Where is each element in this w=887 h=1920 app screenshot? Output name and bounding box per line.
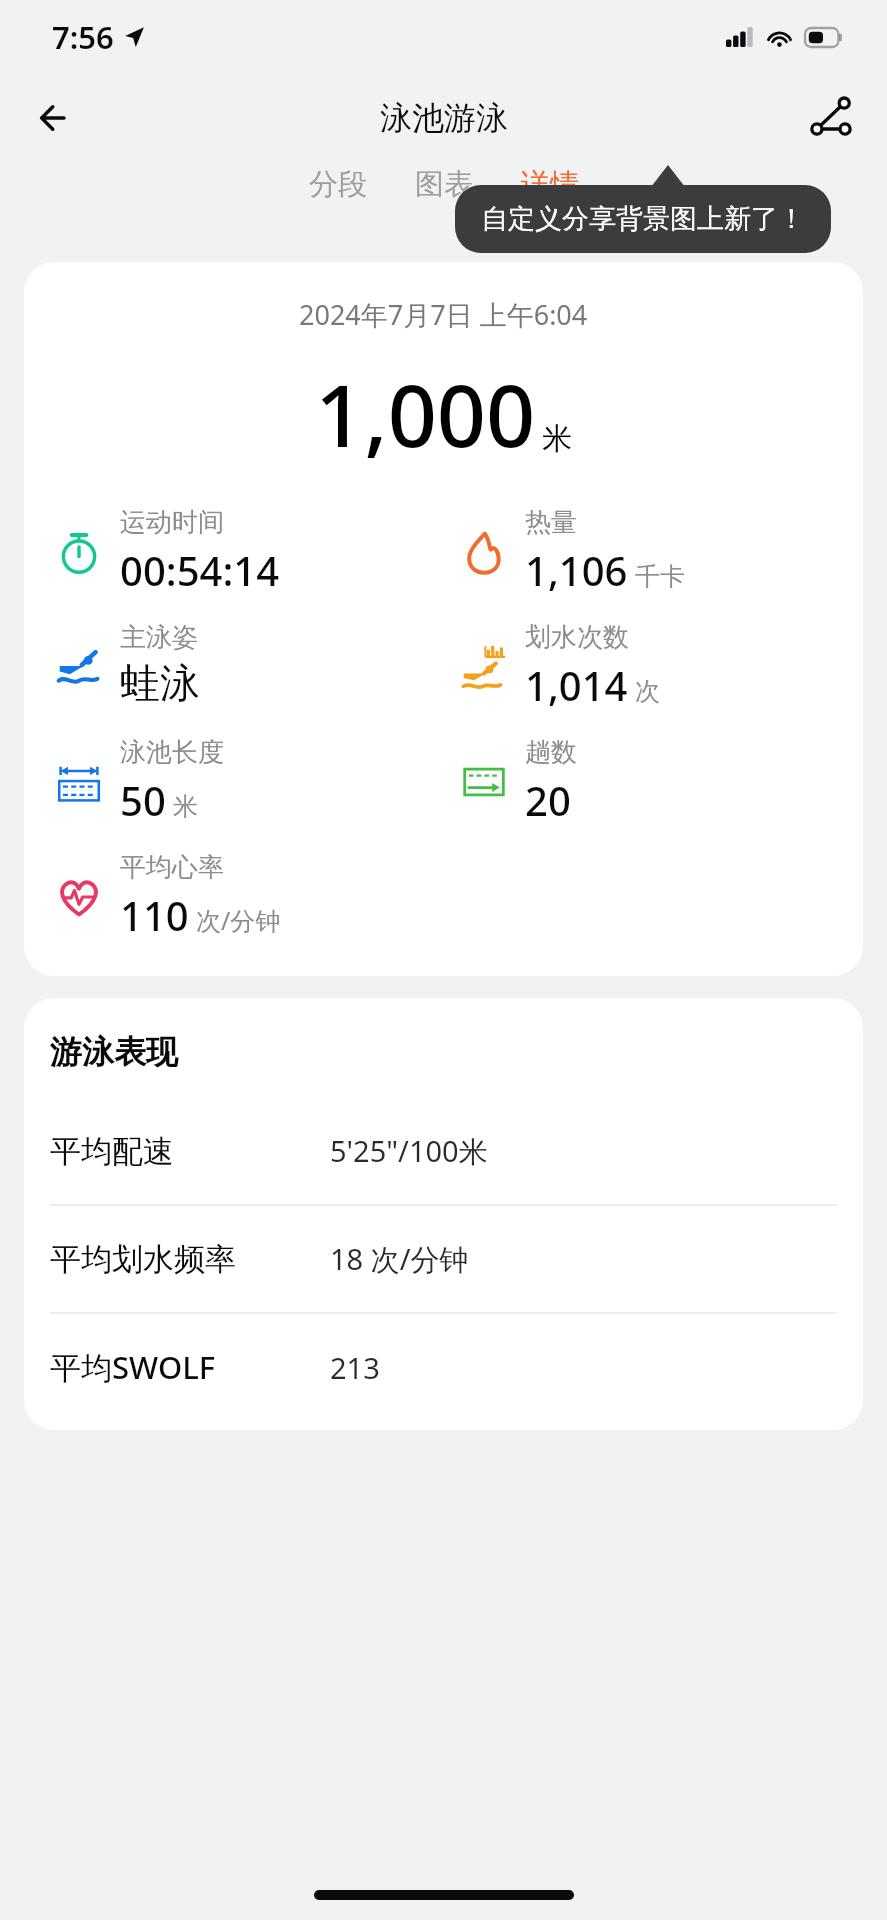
staticText: 平均配速 xyxy=(50,1132,330,1171)
staticText: 主泳姿 xyxy=(120,621,198,654)
button[interactable]: 趟数 xyxy=(457,736,577,827)
staticText: 分段 xyxy=(309,166,367,203)
staticText: 1,014 xyxy=(525,658,628,712)
staticText: 5'25"/100米 xyxy=(330,1131,488,1171)
staticText: 自定义分享背景图上新了！ xyxy=(481,202,805,236)
button[interactable]: 热量 xyxy=(457,506,685,597)
staticText: 运动时间 xyxy=(120,506,224,539)
button[interactable]: 详情 xyxy=(511,162,589,223)
button[interactable]: 返回 xyxy=(22,84,90,152)
button[interactable]: 运动时间 xyxy=(52,506,280,597)
staticText: 平均SWOLF xyxy=(50,1346,330,1388)
button[interactable]: 分享 xyxy=(799,86,863,150)
staticText: 米 xyxy=(173,791,198,822)
staticText: 7:56 xyxy=(52,16,114,58)
staticText: 次/分钟 xyxy=(196,903,281,937)
button[interactable]: 平均划水频率 xyxy=(50,1206,837,1314)
staticText: 平均划水频率 xyxy=(50,1240,330,1279)
button[interactable]: 自定义分享背景图上新了！ xyxy=(455,185,831,253)
button[interactable]: 平均SWOLF xyxy=(50,1314,837,1420)
button[interactable]: 分段 xyxy=(299,162,377,223)
staticText: 1,000 xyxy=(315,355,536,472)
staticText: 泳池长度 xyxy=(120,736,224,769)
staticText: 热量 xyxy=(525,506,577,539)
staticText: 图表 xyxy=(415,166,473,203)
staticText: 平均心率 xyxy=(120,851,224,884)
button[interactable]: 泳池长度 xyxy=(52,736,224,827)
staticText: 50 xyxy=(120,773,166,827)
staticText: 次 xyxy=(635,676,660,707)
button[interactable]: 划水次数 xyxy=(457,621,660,712)
staticText: 18 次/分钟 xyxy=(330,1239,469,1279)
staticText: 213 xyxy=(330,1348,380,1387)
button[interactable]: 图表 xyxy=(405,162,483,223)
staticText: 20 xyxy=(525,773,571,827)
button[interactable]: 平均心率 xyxy=(52,851,281,942)
button[interactable]: 主泳姿 xyxy=(52,621,200,708)
staticText: 趟数 xyxy=(525,736,577,769)
staticText: 米 xyxy=(542,420,572,458)
staticText: 00:54:14 xyxy=(120,543,280,597)
staticText: 2024年7月7日 上午6:04 xyxy=(299,296,588,333)
staticText: 1,106 xyxy=(525,543,628,597)
staticText: 划水次数 xyxy=(525,621,629,654)
staticText: 千卡 xyxy=(635,561,685,592)
button[interactable]: 平均配速 xyxy=(50,1098,837,1206)
staticText: 110 xyxy=(120,888,189,942)
staticText: 泳池游泳 xyxy=(380,98,508,138)
staticText: 游泳表现 xyxy=(50,1032,178,1072)
staticText: 蛙泳 xyxy=(120,658,200,708)
staticText: 详情 xyxy=(521,166,579,203)
